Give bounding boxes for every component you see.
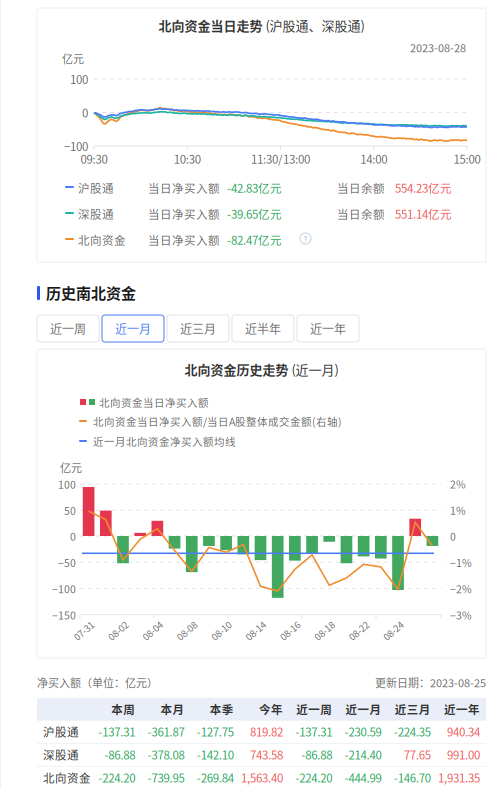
staticText: 近一月 xyxy=(115,320,151,337)
staticText: -224.20 xyxy=(295,769,332,786)
staticText: 551.14亿元 xyxy=(395,205,452,222)
button[interactable]: 近半年 xyxy=(232,315,294,342)
staticText: 1,563.40 xyxy=(241,769,283,786)
staticText: 08-14 xyxy=(244,624,267,637)
staticText: −3% xyxy=(450,607,472,622)
staticText: 940.34 xyxy=(447,723,480,740)
staticText: -127.75 xyxy=(197,723,234,740)
staticText: −100 xyxy=(64,138,88,154)
staticText: 08-18 xyxy=(313,624,336,637)
staticText: 08-02 xyxy=(106,624,129,637)
staticText: 09:30 xyxy=(80,150,107,167)
staticText: 0 xyxy=(70,529,76,544)
staticText: 991.00 xyxy=(447,746,480,763)
staticText: -137.31 xyxy=(98,723,135,740)
staticText: -214.40 xyxy=(344,746,381,763)
staticText: -146.70 xyxy=(394,769,431,786)
staticText: 本周 xyxy=(111,701,135,717)
staticText: 07-31 xyxy=(72,624,95,637)
staticText: 当日余额 xyxy=(337,179,385,196)
staticText: -739.95 xyxy=(147,769,184,786)
staticText: 本季 xyxy=(210,701,234,717)
staticText: 近三月 xyxy=(180,320,216,337)
staticText: 本月 xyxy=(160,701,184,717)
staticText: −2% xyxy=(450,581,472,596)
staticText: 50 xyxy=(64,503,76,518)
staticText: 15:00 xyxy=(453,150,480,167)
staticText: 2023-08-28 xyxy=(410,39,466,55)
button[interactable]: 近三月 xyxy=(167,315,229,342)
staticText: 08-24 xyxy=(381,624,404,637)
button[interactable]: 近一周 xyxy=(37,315,99,342)
button[interactable]: 近一年 xyxy=(297,315,359,342)
staticText: 北向资金当日净买入额 xyxy=(99,395,209,410)
staticText: 08-22 xyxy=(347,624,370,637)
button[interactable]: 近一月 xyxy=(102,315,164,342)
staticText: 743.58 xyxy=(250,746,283,763)
staticText: 历史南北资金 xyxy=(46,282,136,303)
staticText: 0 xyxy=(82,104,88,121)
staticText: 08-08 xyxy=(175,624,198,637)
staticText: 1,931.35 xyxy=(438,769,480,786)
staticText: -42.83亿元 xyxy=(227,179,282,196)
staticText: 当日净买入额 xyxy=(148,205,220,222)
staticText: 近半年 xyxy=(245,320,281,337)
staticText: 77.65 xyxy=(404,746,431,763)
staticText: 554.23亿元 xyxy=(395,179,452,196)
staticText: -39.65亿元 xyxy=(227,205,282,222)
staticText: 北向资金当日净买入额/当日A股整体成交金额(右轴) xyxy=(93,414,342,429)
staticText: 近一年 xyxy=(444,701,480,717)
staticText: -444.99 xyxy=(344,769,381,786)
staticText: 亿元 xyxy=(60,459,82,475)
staticText: 北向资金历史走势 xyxy=(184,360,288,378)
staticText: -142.10 xyxy=(197,746,234,763)
staticText: 沪股通 xyxy=(78,179,114,196)
staticText: 近一周 xyxy=(50,320,86,337)
staticText: 北向资金当日走势 xyxy=(158,16,262,34)
staticText: -230.59 xyxy=(344,723,381,740)
staticText: −100 xyxy=(52,581,76,596)
staticText: -224.35 xyxy=(394,723,431,740)
staticText: -224.20 xyxy=(98,769,135,786)
staticText: 08-04 xyxy=(141,624,164,637)
staticText: 100 xyxy=(70,71,88,87)
staticText: 北向资金 xyxy=(78,231,126,248)
staticText: 1% xyxy=(450,502,466,518)
staticText: 0 xyxy=(450,529,456,544)
staticText: -361.87 xyxy=(147,723,184,740)
staticText: 2% xyxy=(450,476,466,491)
staticText: -137.31 xyxy=(295,723,332,740)
staticText: -86.88 xyxy=(104,746,135,763)
staticText: −50 xyxy=(58,555,76,570)
staticText: 当日余额 xyxy=(337,205,385,222)
staticText: 14:00 xyxy=(360,150,387,167)
staticText: 亿元 xyxy=(62,50,84,66)
staticText: 100 xyxy=(58,477,76,492)
staticText: -378.08 xyxy=(147,746,184,763)
staticText: 深股通 xyxy=(78,205,114,222)
staticText: 11:30/13:00 xyxy=(251,150,310,167)
staticText: ? xyxy=(303,233,307,244)
staticText: (近一月) xyxy=(288,360,338,378)
staticText: (沪股通、深股通) xyxy=(262,16,364,34)
staticText: 深股通 xyxy=(43,746,79,763)
staticText: 净买入额（单位：亿元） xyxy=(37,674,158,690)
staticText: −1% xyxy=(450,555,472,570)
staticText: −150 xyxy=(52,607,76,622)
staticText: 沪股通 xyxy=(43,723,79,740)
staticText: 北向资金 xyxy=(43,769,91,786)
staticText: -82.47亿元 xyxy=(227,231,282,248)
staticText: 更新日期：2023-08-25 xyxy=(375,674,486,690)
staticText: 近一月 xyxy=(345,701,381,717)
staticText: 近三月 xyxy=(395,701,431,717)
staticText: -86.88 xyxy=(301,746,332,763)
staticText: 近一年 xyxy=(310,320,346,337)
staticText: 近一月北向资金净买入额均线 xyxy=(93,434,236,449)
staticText: 当日净买入额 xyxy=(148,179,220,196)
staticText: 当日净买入额 xyxy=(148,231,220,248)
button[interactable]: 说明 xyxy=(300,233,311,244)
staticText: 10:30 xyxy=(174,150,201,167)
staticText: 08-10 xyxy=(210,624,233,637)
staticText: 819.82 xyxy=(250,723,283,740)
staticText: 08-16 xyxy=(278,624,301,637)
